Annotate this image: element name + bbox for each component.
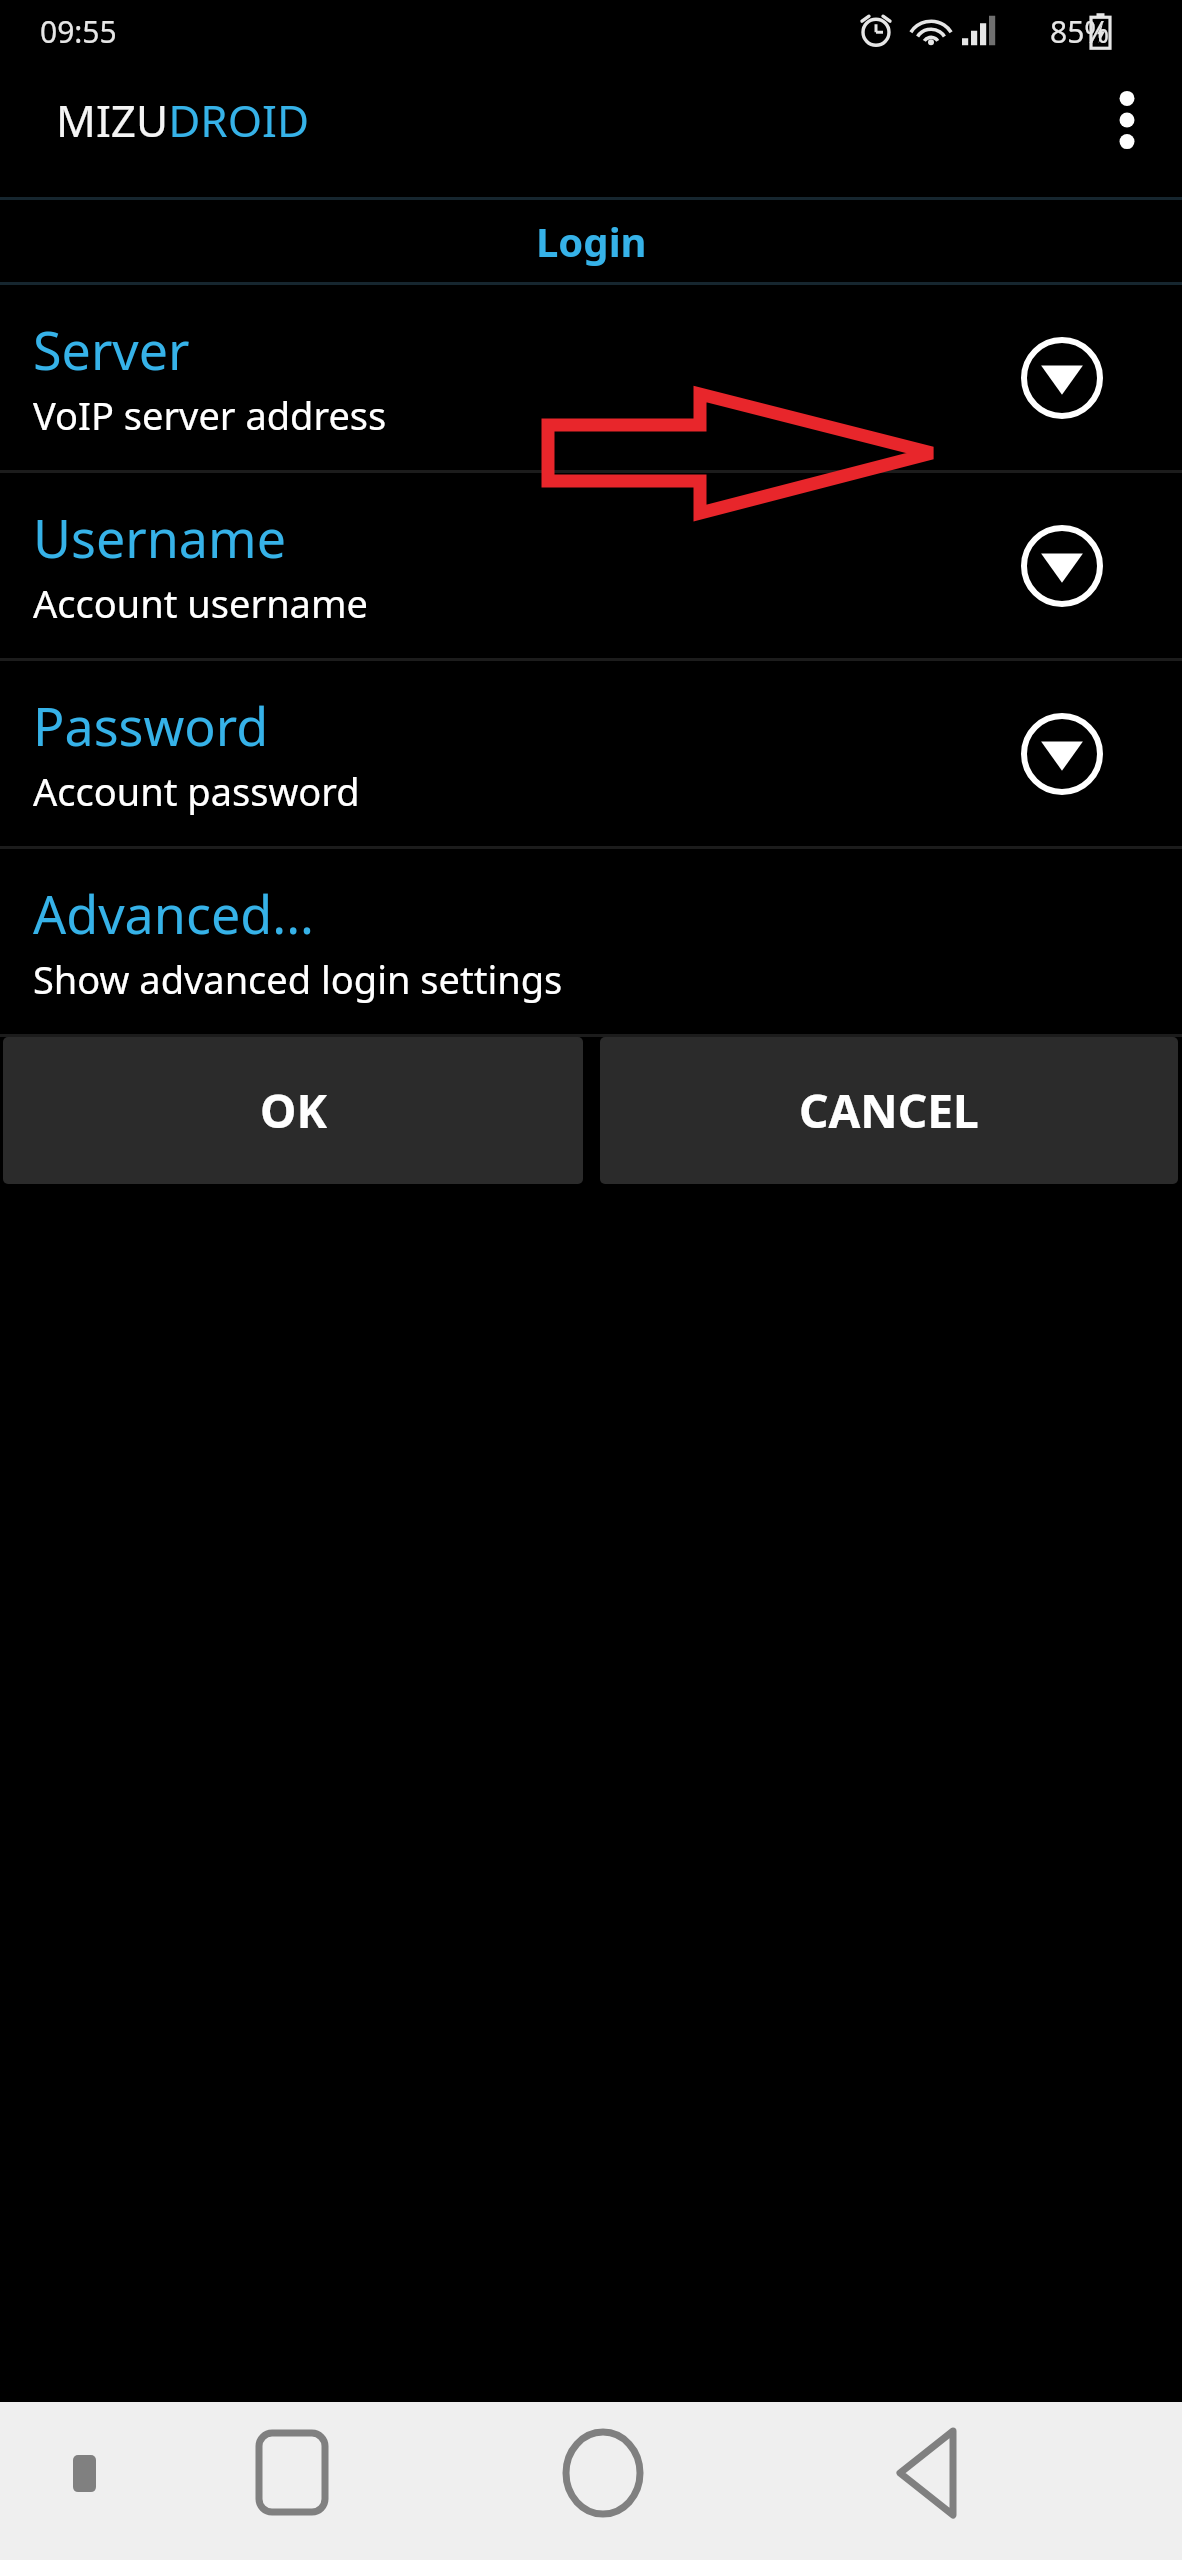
button[interactable]: CANCEL bbox=[600, 1037, 1178, 1184]
staticText: 09:55 bbox=[40, 11, 117, 52]
button[interactable]: More options bbox=[1072, 62, 1182, 177]
staticText: Show advanced login settings bbox=[33, 953, 563, 1005]
button[interactable]: Password bbox=[0, 661, 1182, 846]
staticText: Username bbox=[33, 502, 286, 573]
button[interactable]: Expand Username bbox=[1018, 522, 1106, 610]
staticText: Server bbox=[33, 314, 190, 385]
button[interactable]: Username bbox=[0, 473, 1182, 658]
staticText: Account password bbox=[33, 765, 360, 817]
button[interactable]: Advanced... bbox=[0, 849, 1182, 1034]
staticText: Login bbox=[536, 214, 647, 268]
staticText: OK bbox=[260, 1079, 327, 1142]
staticText: MIZUDROID bbox=[56, 90, 310, 150]
button[interactable]: Expand Password bbox=[1018, 710, 1106, 798]
staticText: Password bbox=[33, 690, 269, 761]
staticText: CANCEL bbox=[799, 1079, 979, 1142]
button[interactable]: Server bbox=[0, 285, 1182, 470]
button[interactable]: OK bbox=[3, 1037, 583, 1184]
button[interactable]: Expand Server bbox=[1018, 334, 1106, 422]
staticText: 85% bbox=[1050, 11, 1110, 52]
staticText: VoIP server address bbox=[33, 389, 387, 441]
staticText: Account username bbox=[33, 577, 368, 629]
staticText: Advanced... bbox=[33, 878, 315, 949]
